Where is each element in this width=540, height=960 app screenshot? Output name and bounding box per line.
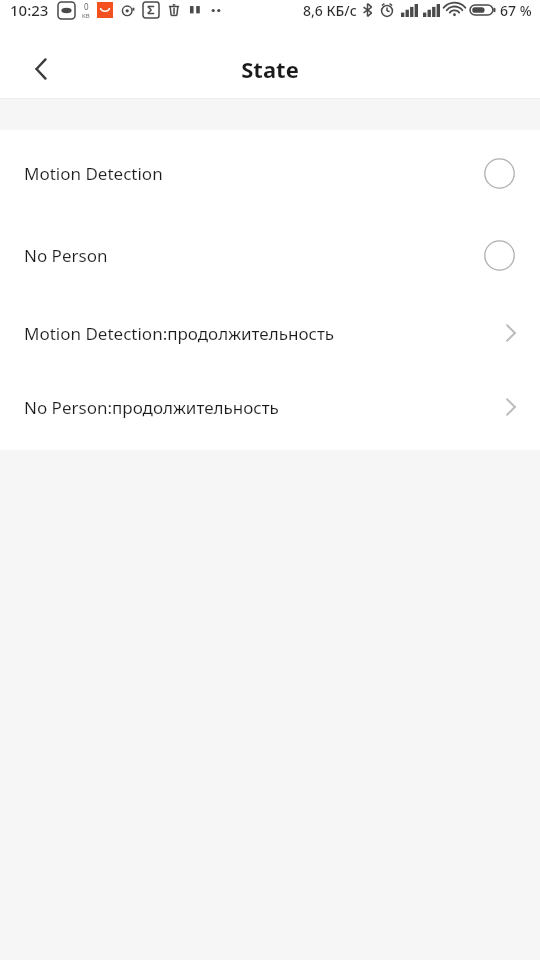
staticText: No Person xyxy=(24,244,108,267)
staticText: 0 xyxy=(84,1,89,12)
staticText: 67 % xyxy=(500,1,532,20)
button[interactable]: Motion Detection xyxy=(0,146,540,200)
staticText: Motion Detection xyxy=(24,162,163,185)
staticText: Motion Detection:продолжительность xyxy=(24,322,335,345)
staticText: No Person:продолжительность xyxy=(24,396,279,419)
staticText: 8,6 КБ/с xyxy=(303,1,357,20)
staticText: 10:23 xyxy=(10,0,49,20)
button[interactable]: No Person xyxy=(0,228,540,282)
button[interactable]: Motion Detection:продолжительность xyxy=(0,308,540,358)
button[interactable]: No Person:продолжительность xyxy=(0,382,540,432)
staticText: State xyxy=(241,54,299,84)
staticText: KB xyxy=(82,12,90,20)
button[interactable]: Back xyxy=(18,46,64,92)
